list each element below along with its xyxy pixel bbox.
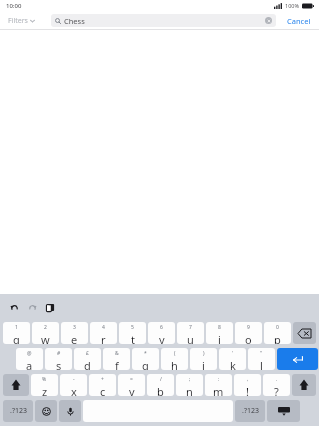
staticText: ; xyxy=(189,376,191,383)
button[interactable]: Return xyxy=(277,348,318,370)
staticText: k xyxy=(230,358,236,370)
button[interactable]: , xyxy=(234,374,261,396)
staticText: j xyxy=(202,358,205,370)
button[interactable]: & xyxy=(103,348,130,370)
staticText: * xyxy=(144,350,147,357)
button[interactable]: .?123 xyxy=(235,400,265,422)
staticText: n xyxy=(186,384,193,396)
staticText: 10:00 xyxy=(6,2,22,10)
staticText: u xyxy=(187,332,194,344)
staticText: 5 xyxy=(131,324,134,331)
button[interactable]: Shift xyxy=(292,374,316,396)
staticText: h xyxy=(171,358,178,370)
staticText: = xyxy=(130,376,133,383)
button[interactable]: / xyxy=(147,374,174,396)
staticText: £ xyxy=(86,350,89,357)
button[interactable]: Paste xyxy=(43,300,58,315)
staticText: 8 xyxy=(218,324,221,331)
button[interactable]: Hide keyboard xyxy=(267,400,300,422)
button[interactable]: 1 xyxy=(3,322,30,344)
button[interactable]: . xyxy=(263,374,290,396)
button[interactable]: : xyxy=(205,374,232,396)
button[interactable]: Chess xyxy=(51,14,276,27)
staticText: : xyxy=(218,376,220,383)
button[interactable]: Emoji xyxy=(35,400,57,422)
staticText: 4 xyxy=(102,324,105,331)
button[interactable]: 9 xyxy=(235,322,262,344)
staticText: b xyxy=(157,384,164,396)
staticText: s xyxy=(56,358,62,370)
staticText: ' xyxy=(232,350,234,357)
staticText: g xyxy=(142,358,149,370)
staticText: f xyxy=(115,358,119,370)
button[interactable]: 7 xyxy=(177,322,204,344)
staticText: / xyxy=(160,376,162,383)
staticText: - xyxy=(73,376,75,383)
button[interactable]: Dictation xyxy=(59,400,81,422)
staticText: 0 xyxy=(276,324,279,331)
staticText: e xyxy=(71,332,78,344)
button[interactable]: £ xyxy=(74,348,101,370)
staticText: .?123 xyxy=(242,406,259,416)
staticText: w xyxy=(41,332,50,344)
staticText: ) xyxy=(203,350,205,357)
button[interactable]: .?123 xyxy=(3,400,33,422)
button[interactable]: Filters xyxy=(6,16,37,26)
staticText: . xyxy=(276,376,278,383)
button[interactable]: 4 xyxy=(90,322,117,344)
staticText: % xyxy=(42,376,47,383)
staticText: z xyxy=(42,384,48,396)
staticText: x xyxy=(71,384,77,396)
button[interactable]: Undo xyxy=(7,300,22,315)
staticText: 7 xyxy=(189,324,192,331)
button[interactable]: Backspace xyxy=(293,322,316,344)
button[interactable]: + xyxy=(89,374,116,396)
button[interactable]: ' xyxy=(219,348,246,370)
staticText: .?123 xyxy=(10,406,27,416)
staticText: # xyxy=(57,350,61,357)
button[interactable]: * xyxy=(132,348,159,370)
button[interactable]: # xyxy=(45,348,72,370)
button[interactable]: 2 xyxy=(32,322,59,344)
button[interactable]: - xyxy=(60,374,87,396)
button[interactable]: Redo xyxy=(25,300,40,315)
staticText: i xyxy=(218,332,221,344)
staticText: m xyxy=(213,384,224,396)
staticText: 100% xyxy=(285,2,300,9)
button[interactable]: 3 xyxy=(61,322,88,344)
staticText: l xyxy=(260,358,263,370)
staticText: p xyxy=(274,332,281,344)
staticText: @ xyxy=(27,350,32,357)
staticText: " xyxy=(260,350,263,357)
button[interactable]: Shift xyxy=(3,374,29,396)
button[interactable]: 6 xyxy=(148,322,175,344)
button[interactable]: Cancel xyxy=(285,16,313,26)
staticText: ( xyxy=(174,350,176,357)
button[interactable]: @ xyxy=(16,348,43,370)
staticText: Filters xyxy=(8,16,28,26)
staticText: r xyxy=(101,332,106,344)
staticText: 3 xyxy=(73,324,76,331)
staticText: 6 xyxy=(160,324,163,331)
staticText: & xyxy=(115,350,119,357)
staticText: Chess xyxy=(64,16,85,26)
button[interactable]: ) xyxy=(190,348,217,370)
button[interactable]: " xyxy=(248,348,275,370)
staticText: t xyxy=(131,332,135,344)
staticText: d xyxy=(84,358,91,370)
staticText: c xyxy=(100,384,106,396)
staticText: ! xyxy=(246,384,249,396)
staticText: y xyxy=(159,332,165,344)
button[interactable]: ( xyxy=(161,348,188,370)
staticText: o xyxy=(245,332,252,344)
button[interactable]: = xyxy=(118,374,145,396)
button[interactable]: % xyxy=(31,374,58,396)
button[interactable]: 5 xyxy=(119,322,146,344)
staticText: 2 xyxy=(44,324,47,331)
button[interactable]: Clear search xyxy=(265,17,272,24)
button[interactable]: ; xyxy=(176,374,203,396)
button[interactable]: 8 xyxy=(206,322,233,344)
staticText: , xyxy=(247,376,249,383)
button[interactable]: 0 xyxy=(264,322,291,344)
